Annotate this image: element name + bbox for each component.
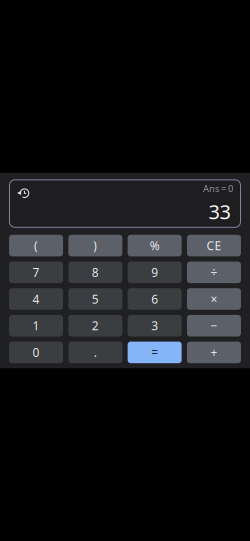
button[interactable]: × xyxy=(187,288,241,310)
staticText: % xyxy=(150,238,160,253)
staticText: × xyxy=(210,291,217,307)
button[interactable]: 3 xyxy=(128,315,182,336)
staticText: 5 xyxy=(92,291,99,307)
button[interactable]: CE xyxy=(187,235,241,256)
staticText: ) xyxy=(93,238,97,253)
button[interactable]: ( xyxy=(9,235,63,256)
staticText: 0 xyxy=(32,344,39,360)
staticText: CE xyxy=(206,238,221,253)
button[interactable]: − xyxy=(187,315,241,336)
button[interactable]: 0 xyxy=(9,342,63,363)
staticText: = xyxy=(151,344,158,360)
button[interactable]: . xyxy=(68,342,122,363)
button[interactable]: 2 xyxy=(68,315,122,336)
button[interactable]: ) xyxy=(68,235,122,256)
staticText: Ans = 0 xyxy=(203,182,233,195)
button[interactable]: = xyxy=(128,342,182,363)
staticText: 9 xyxy=(151,264,158,280)
button[interactable]: History xyxy=(15,184,32,202)
button[interactable]: % xyxy=(128,235,182,256)
button[interactable]: 5 xyxy=(68,288,122,310)
staticText: + xyxy=(210,344,217,360)
staticText: 6 xyxy=(151,291,158,307)
staticText: 8 xyxy=(92,264,99,280)
staticText: − xyxy=(210,318,217,334)
staticText: ÷ xyxy=(210,264,217,280)
button[interactable]: 7 xyxy=(9,261,63,283)
button[interactable]: 4 xyxy=(9,288,63,310)
staticText: ( xyxy=(34,238,38,253)
staticText: 33 xyxy=(208,198,230,225)
button[interactable]: 6 xyxy=(128,288,182,310)
button[interactable]: 9 xyxy=(128,261,182,283)
staticText: 3 xyxy=(151,318,158,334)
staticText: . xyxy=(94,344,97,360)
staticText: 4 xyxy=(32,291,39,307)
staticText: 1 xyxy=(32,318,39,334)
staticText: 2 xyxy=(92,318,99,334)
button[interactable]: ÷ xyxy=(187,261,241,283)
staticText: 7 xyxy=(32,264,39,280)
button[interactable]: 8 xyxy=(68,261,122,283)
button[interactable]: 1 xyxy=(9,315,63,336)
button[interactable]: + xyxy=(187,342,241,363)
